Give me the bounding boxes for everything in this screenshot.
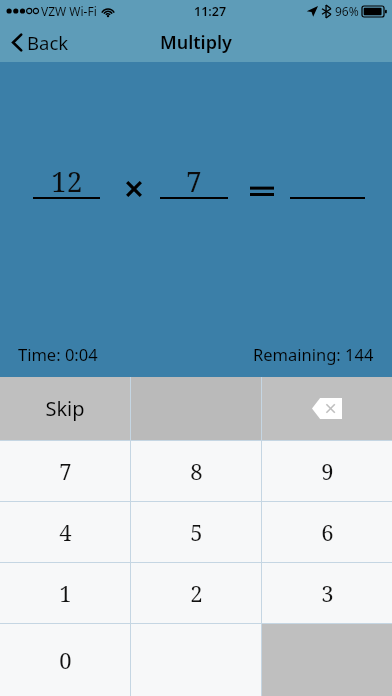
staticText: 4 <box>59 517 72 547</box>
button[interactable]: 9 <box>262 441 392 501</box>
button[interactable]: 7 <box>0 441 130 501</box>
button[interactable]: 3 <box>262 563 392 623</box>
staticText: 5 <box>190 517 203 547</box>
staticText: 6 <box>321 517 334 547</box>
staticText: 12 <box>51 162 83 194</box>
button[interactable]: 2 <box>131 563 261 623</box>
button[interactable]: 4 <box>0 502 130 562</box>
button[interactable]: 0 <box>0 624 130 696</box>
staticText: Remaining: 144 <box>253 343 374 365</box>
staticText: 7 <box>186 162 202 194</box>
button[interactable]: Skip <box>0 377 130 440</box>
staticText: Back <box>27 30 69 55</box>
staticText: 8 <box>190 456 203 486</box>
staticText: 3 <box>321 578 334 608</box>
staticText: 2 <box>190 578 203 608</box>
staticText: Time: 0:04 <box>18 343 98 365</box>
button[interactable]: Back <box>0 26 83 59</box>
staticText: 96% <box>335 3 359 19</box>
button[interactable]: 5 <box>131 502 261 562</box>
staticText: 0 <box>59 645 72 675</box>
button[interactable]: 6 <box>262 502 392 562</box>
staticText: 9 <box>321 456 334 486</box>
staticText: 11:27 <box>194 3 227 20</box>
staticText: 7 <box>59 456 72 486</box>
button[interactable]: Delete <box>262 377 392 440</box>
staticText: Multiply <box>160 30 232 55</box>
staticText: Skip <box>45 395 85 422</box>
button[interactable]: 8 <box>131 441 261 501</box>
staticText: VZW Wi-Fi <box>41 3 97 19</box>
staticText: 1 <box>59 578 72 608</box>
button[interactable]: 1 <box>0 563 130 623</box>
